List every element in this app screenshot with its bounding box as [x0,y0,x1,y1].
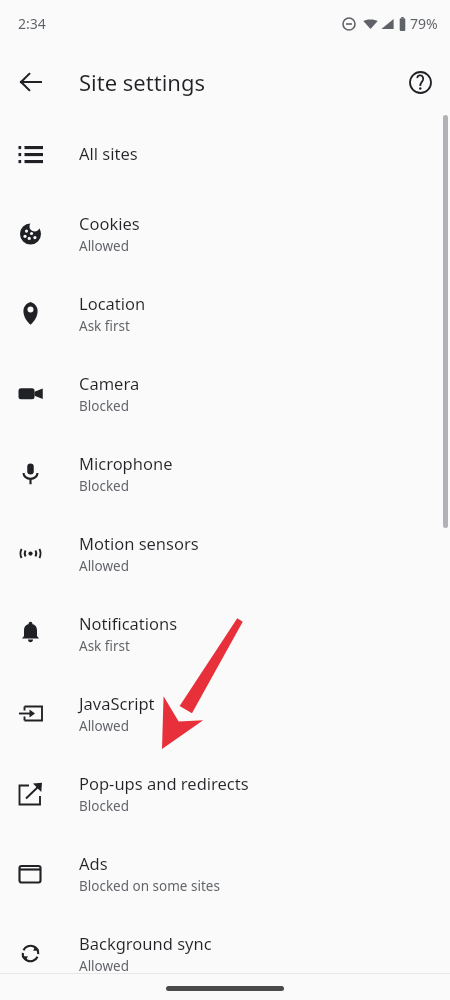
staticText: Ads [79,852,108,874]
staticText: Motion sensors [79,532,199,554]
button[interactable]: Pop-ups and redirects [0,753,450,833]
staticText: Allowed [79,557,130,575]
staticText: 79% [410,14,438,33]
button[interactable]: Back [9,60,53,104]
button[interactable]: Ads [0,833,450,913]
staticText: 2:34 [18,14,46,33]
button[interactable]: Motion sensors [0,513,450,593]
staticText: Background sync [79,932,212,954]
button[interactable]: Location [0,273,450,353]
staticText: Ask first [79,317,130,335]
staticText: Site settings [79,67,205,97]
staticText: Allowed [79,717,130,735]
button[interactable]: All sites [0,113,450,193]
button[interactable]: Camera [0,353,450,433]
button[interactable]: Help [398,60,442,104]
staticText: Microphone [79,452,173,474]
staticText: Ask first [79,637,130,655]
button[interactable]: Notifications [0,593,450,673]
staticText: Cookies [79,212,140,234]
button[interactable]: Microphone [0,433,450,513]
staticText: Blocked on some sites [79,877,220,895]
button[interactable]: JavaScript [0,673,450,753]
staticText: Notifications [79,612,178,634]
staticText: Camera [79,372,140,394]
staticText: All sites [79,142,138,164]
staticText: JavaScript [79,692,155,714]
staticText: Blocked [79,397,130,415]
staticText: Pop-ups and redirects [79,772,249,794]
staticText: Blocked [79,797,130,815]
staticText: Allowed [79,957,130,975]
button[interactable]: Background sync [0,913,450,993]
staticText: Blocked [79,477,130,495]
staticText: Allowed [79,237,130,255]
button[interactable]: Cookies [0,193,450,273]
staticText: Location [79,292,146,314]
